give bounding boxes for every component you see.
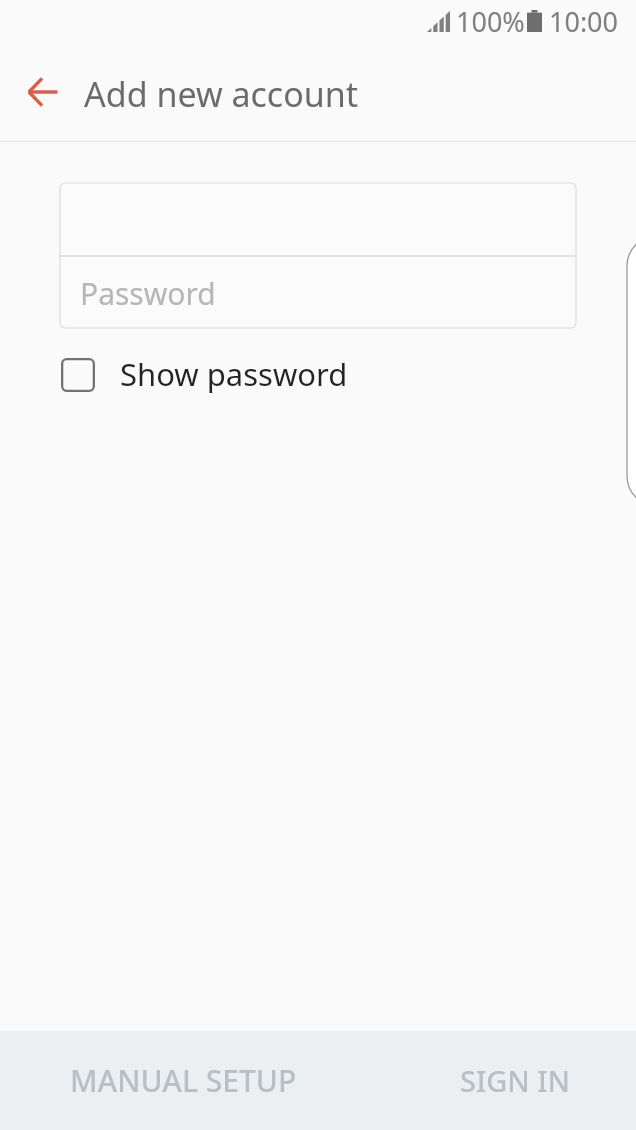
button[interactable]: Show password xyxy=(48,345,368,403)
staticText: Add new account xyxy=(84,71,359,117)
button[interactable]: Password xyxy=(60,257,576,328)
button[interactable]: MANUAL SETUP xyxy=(70,1060,297,1101)
staticText: SIGN IN xyxy=(460,1061,571,1100)
staticText: Show password xyxy=(120,353,348,395)
button[interactable]: Navigate up xyxy=(18,64,74,120)
staticText: Password xyxy=(80,273,216,314)
staticText: 100% xyxy=(456,3,525,40)
staticText: MANUAL SETUP xyxy=(70,1060,297,1101)
staticText: 10:00 xyxy=(549,3,619,40)
button[interactable]: SIGN IN xyxy=(460,1061,571,1100)
